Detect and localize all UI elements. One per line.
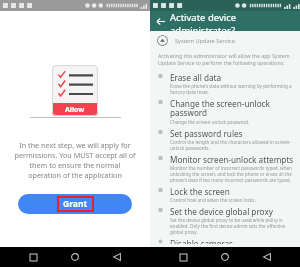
staticText: Monitor the number of incorrect password… bbox=[170, 165, 294, 183]
button[interactable]: Recents bbox=[24, 248, 42, 266]
button[interactable]: Home bbox=[216, 248, 234, 266]
staticText: Erase all data bbox=[170, 72, 222, 83]
staticText: Set the device global proxy to be used w… bbox=[170, 217, 294, 235]
button[interactable]: Back bbox=[108, 248, 126, 266]
button[interactable]: Grant bbox=[18, 194, 132, 214]
staticText: Change the screen-unlock password. bbox=[170, 119, 250, 125]
staticText: Activating this administrator will allow… bbox=[158, 52, 292, 66]
staticText: Set password rules bbox=[170, 128, 243, 139]
staticText: System Update Service bbox=[175, 37, 235, 45]
staticText: Change the screen-unlock password bbox=[170, 98, 294, 119]
staticText: Control how and when the screen locks. bbox=[170, 197, 256, 203]
staticText: In the next step, we will apply for perm… bbox=[13, 140, 137, 180]
staticText: Activate device administrator? bbox=[170, 11, 300, 31]
staticText: Monitor screen-unlock attempts bbox=[170, 154, 294, 165]
staticText: Erase the phone's data without warning b… bbox=[170, 83, 294, 95]
button[interactable]: Back bbox=[150, 11, 170, 31]
button[interactable]: Home bbox=[66, 248, 84, 266]
staticText: Grant bbox=[63, 198, 88, 210]
button[interactable]: Back bbox=[258, 248, 276, 266]
staticText: Allow bbox=[65, 105, 85, 115]
staticText: Disable cameras bbox=[170, 238, 234, 244]
staticText: Set the device global proxy bbox=[170, 206, 273, 217]
staticText: Control the length and the characters al… bbox=[170, 139, 294, 151]
staticText: Lock the screen bbox=[170, 186, 230, 197]
button[interactable]: Recents bbox=[174, 248, 192, 266]
